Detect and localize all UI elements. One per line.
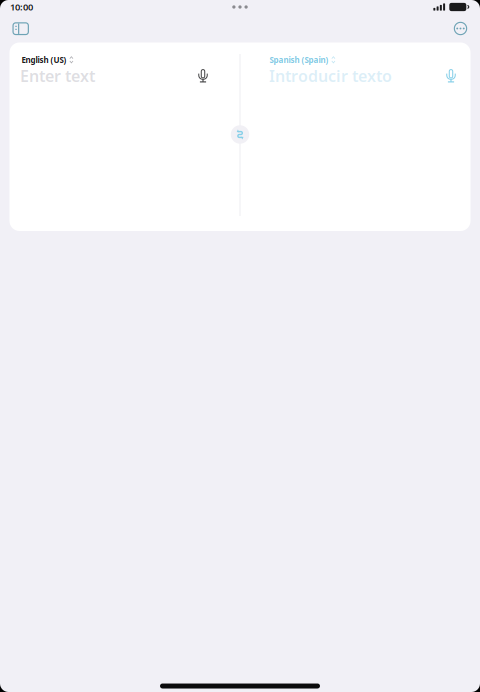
staticText: 10:00 xyxy=(10,1,33,13)
button[interactable]: More options xyxy=(447,15,473,41)
staticText: Enter text xyxy=(20,65,95,86)
staticText: English (US) xyxy=(21,54,66,65)
button[interactable]: Spanish (Spain) xyxy=(269,51,338,68)
button[interactable]: Dictate English xyxy=(191,65,215,87)
staticText: Spanish (Spain) xyxy=(269,54,328,65)
button[interactable]: English (US) xyxy=(21,51,77,68)
button[interactable]: Show sidebar xyxy=(6,16,36,42)
button[interactable]: Swap languages xyxy=(227,121,253,147)
staticText: Introducir texto xyxy=(269,65,392,86)
button[interactable]: Dictate Spanish xyxy=(439,65,463,87)
